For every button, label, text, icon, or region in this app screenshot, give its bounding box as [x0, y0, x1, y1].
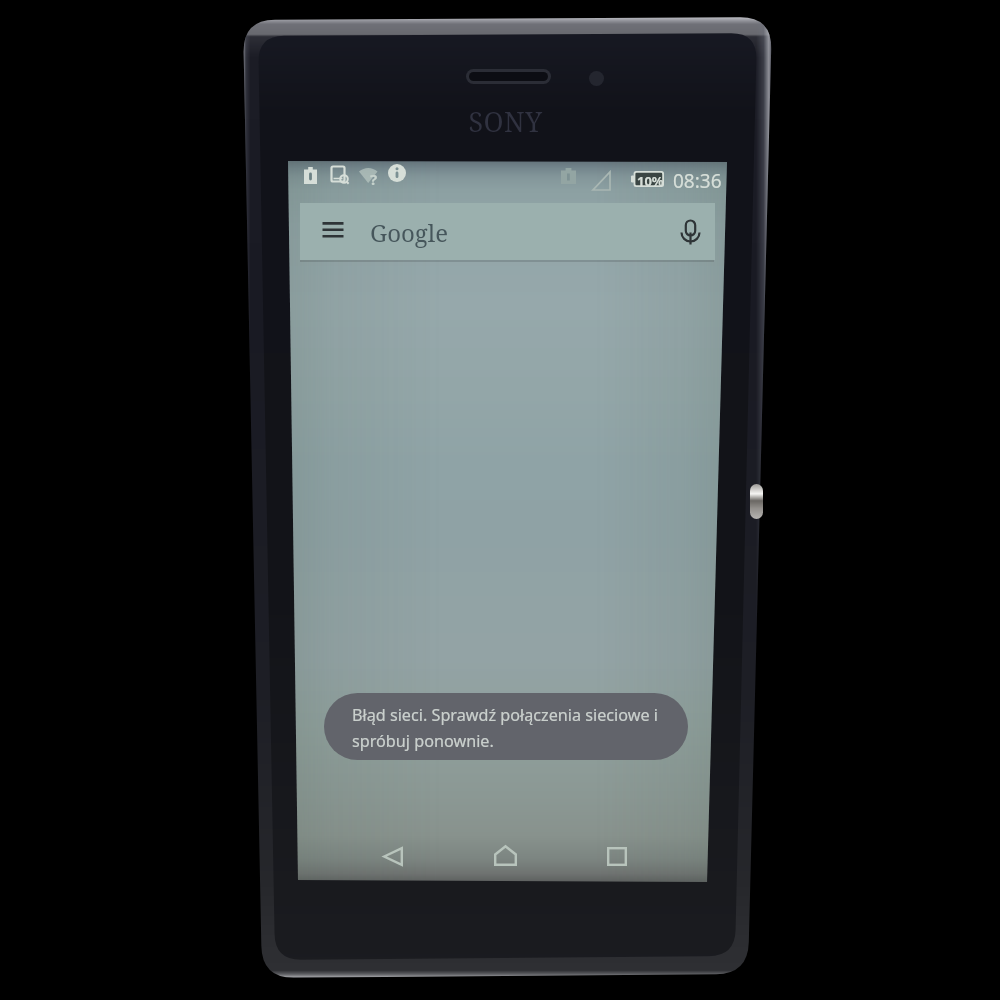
button[interactable]: Back — [383, 847, 403, 866]
button[interactable]: Menu — [300, 203, 715, 260]
button[interactable]: Home — [494, 845, 517, 866]
button[interactable]: Menu — [322, 222, 344, 240]
staticText: 08:36 — [673, 168, 722, 194]
staticText: Google — [370, 216, 449, 249]
button[interactable]: Recent apps — [607, 847, 627, 866]
staticText: Błąd sieci. Sprawdź połączenia sieciowe … — [352, 704, 658, 751]
staticText: SONY — [440, 103, 571, 140]
button[interactable]: Voice search — [678, 220, 703, 245]
staticText: ? — [370, 169, 378, 189]
staticText: 10% — [637, 172, 664, 188]
